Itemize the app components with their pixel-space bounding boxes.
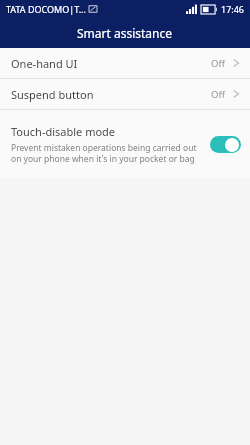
staticText: Prevent mistaken operations being carrie… xyxy=(11,142,202,164)
button[interactable]: Touch-disable mode xyxy=(0,110,250,178)
button[interactable]: Touch-disable mode toggle xyxy=(210,136,241,153)
staticText: Suspend button xyxy=(11,87,211,102)
staticText: Touch-disable mode xyxy=(11,124,116,139)
staticText: TATA DOCOMO|T... xyxy=(6,3,86,15)
staticText: 17:46 xyxy=(221,3,245,15)
button[interactable]: One-hand UI xyxy=(0,48,250,78)
staticText: Smart assistance xyxy=(77,25,173,41)
staticText: Off xyxy=(211,88,225,101)
button[interactable]: Suspend button xyxy=(0,79,250,109)
staticText: One-hand UI xyxy=(11,56,211,71)
staticText: Off xyxy=(211,57,225,70)
